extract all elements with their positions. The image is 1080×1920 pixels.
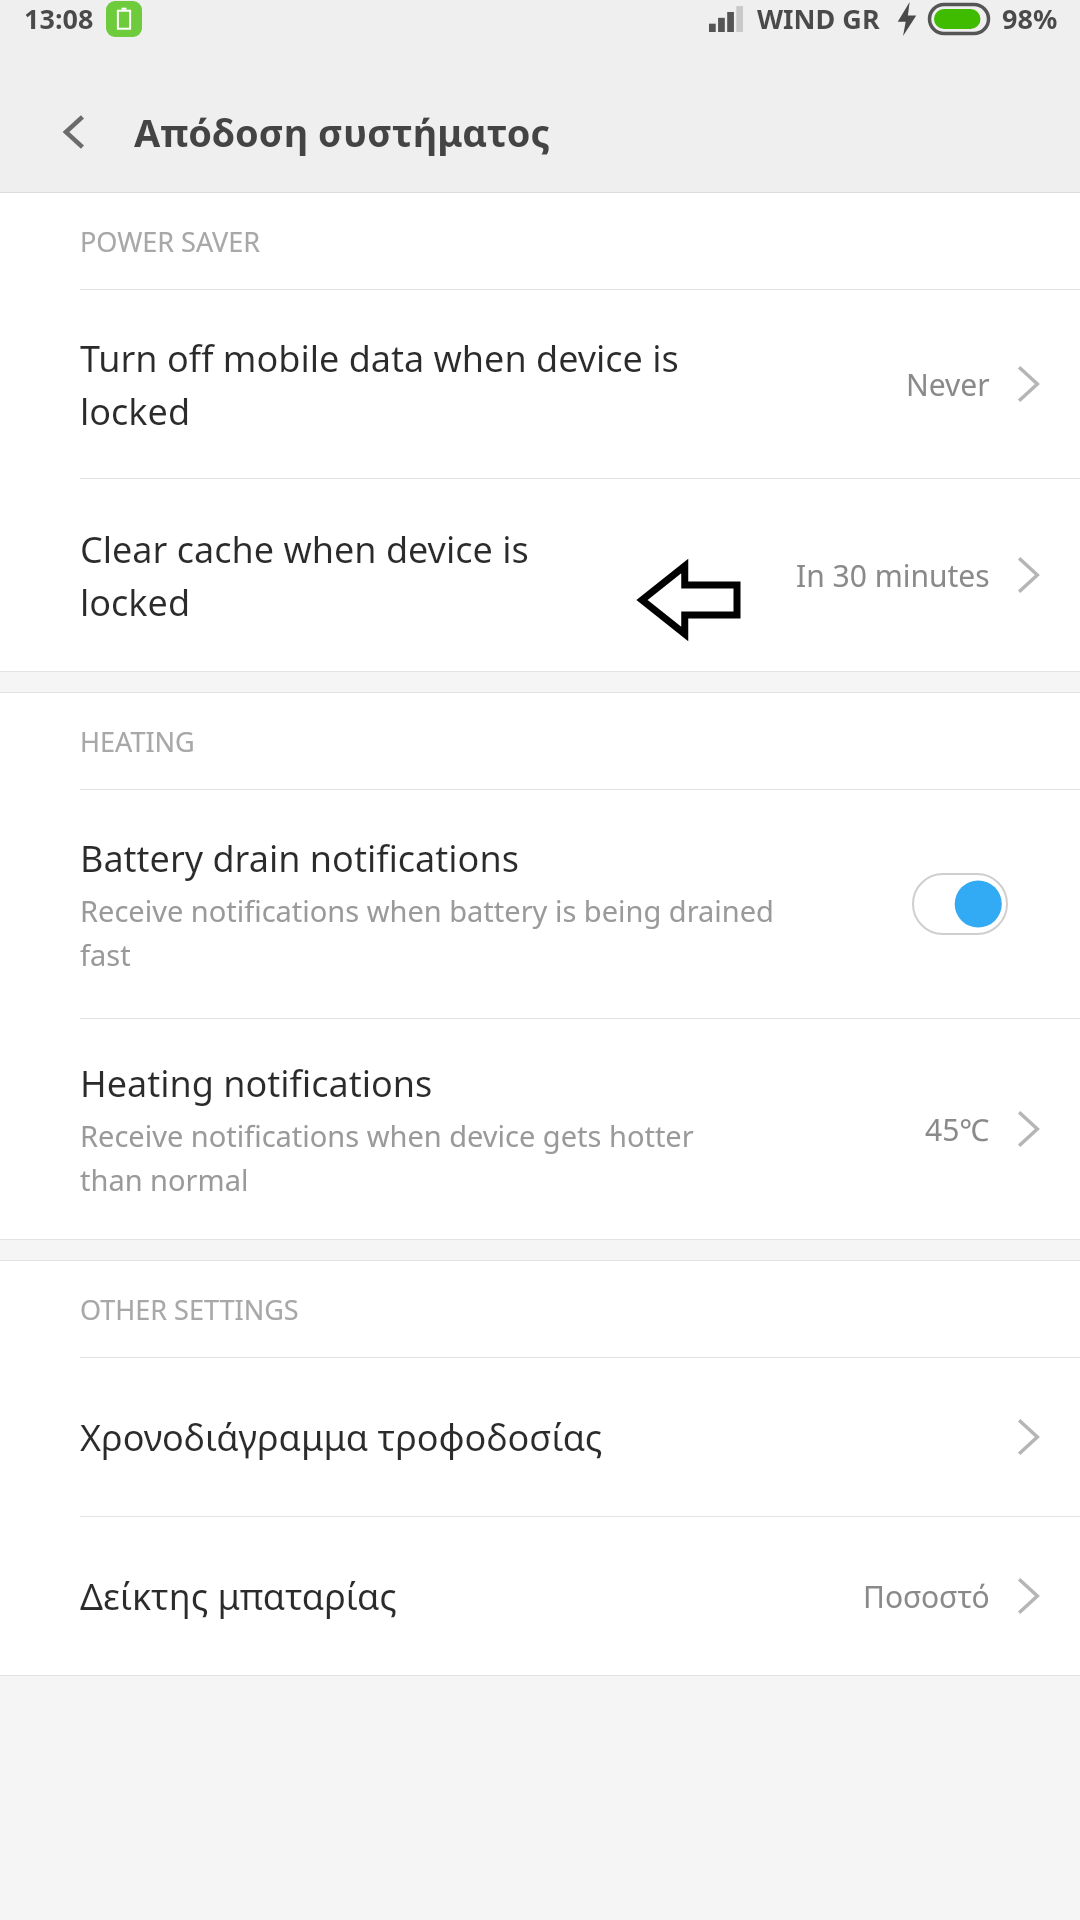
- button[interactable]: Clear cache when device is locked: [0, 479, 1080, 671]
- staticText: OTHER SETTINGS: [80, 1291, 299, 1328]
- button[interactable]: Δείκτης μπαταρίας: [0, 1517, 1080, 1675]
- staticText: Heating notifications: [80, 1059, 433, 1108]
- staticText: 13:08: [24, 0, 94, 37]
- staticText: POWER SAVER: [80, 223, 261, 260]
- staticText: Receive notifications when device gets h…: [80, 1116, 694, 1199]
- staticText: 45℃: [925, 1109, 990, 1150]
- button[interactable]: Χρονοδιάγραμμα τροφοδοσίας: [0, 1358, 1080, 1516]
- staticText: Ποσοστό: [863, 1576, 990, 1617]
- staticText: Never: [906, 364, 990, 405]
- staticText: Χρονοδιάγραμμα τροφοδοσίας: [80, 1413, 603, 1462]
- button[interactable]: Battery drain notifications: [0, 790, 1080, 1018]
- button[interactable]: Battery drain notifications toggle: [912, 873, 1008, 935]
- staticText: Δείκτης μπαταρίας: [80, 1572, 397, 1621]
- button[interactable]: Heating notifications: [0, 1019, 1080, 1239]
- staticText: In 30 minutes: [796, 555, 990, 596]
- button[interactable]: Back: [40, 96, 112, 168]
- button[interactable]: Turn off mobile data when device is lock…: [0, 290, 1080, 478]
- staticText: WIND GR: [757, 0, 880, 37]
- staticText: Receive notifications when battery is be…: [80, 891, 774, 974]
- staticText: Clear cache when device is locked: [80, 525, 529, 626]
- staticText: Απόδοση συστήματος: [134, 106, 551, 158]
- staticText: Battery drain notifications: [80, 834, 519, 883]
- staticText: HEATING: [80, 723, 195, 760]
- staticText: Turn off mobile data when device is lock…: [80, 334, 679, 435]
- staticText: 98%: [1002, 0, 1058, 37]
